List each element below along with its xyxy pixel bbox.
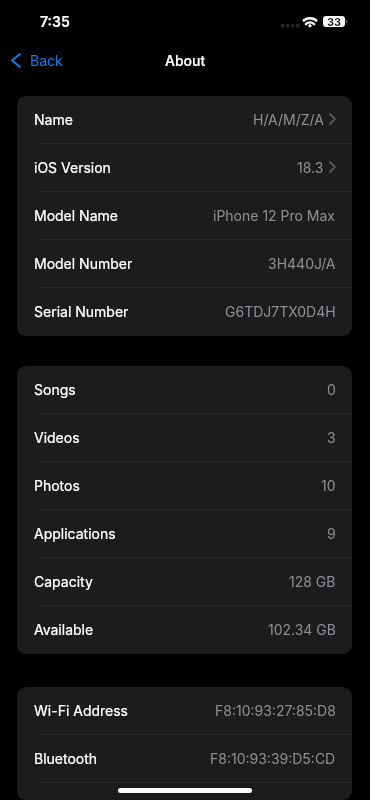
- button[interactable]: Name: [17, 96, 352, 144]
- staticText: Videos: [34, 429, 80, 446]
- button[interactable]: Available: [17, 606, 352, 654]
- staticText: Back: [30, 52, 63, 69]
- staticText: Model Name: [34, 207, 118, 224]
- staticText: Bluetooth: [34, 750, 98, 767]
- button[interactable]: Songs: [17, 366, 352, 414]
- staticText: F8:10:93:27:85:D8: [215, 702, 336, 719]
- staticText: Serial Number: [34, 303, 129, 320]
- button[interactable]: Back: [0, 47, 73, 74]
- staticText: Capacity: [34, 573, 93, 590]
- button[interactable]: Capacity: [17, 558, 352, 606]
- staticText: 3: [327, 429, 336, 446]
- button[interactable]: Wi-Fi Address: [17, 687, 352, 735]
- staticText: G6TDJ7TX0D4H: [225, 303, 336, 320]
- staticText: 9: [327, 525, 336, 542]
- staticText: 18.3: [297, 159, 324, 176]
- staticText: 102.34 GB: [268, 621, 336, 638]
- staticText: Name: [34, 111, 73, 128]
- staticText: 10: [321, 477, 336, 494]
- staticText: iPhone 12 Pro Max: [213, 207, 336, 224]
- button[interactable]: Photos: [17, 462, 352, 510]
- staticText: Photos: [34, 477, 80, 494]
- staticText: H/A/M/Z/A: [253, 111, 324, 128]
- staticText: Model Number: [34, 255, 133, 272]
- staticText: About: [165, 52, 206, 69]
- staticText: 0: [327, 381, 336, 398]
- staticText: 3H440J/A: [268, 255, 336, 272]
- button[interactable]: iOS Version: [17, 144, 352, 192]
- staticText: 7:35: [40, 13, 70, 30]
- button[interactable]: Applications: [17, 510, 352, 558]
- button[interactable]: [17, 783, 352, 800]
- button[interactable]: Model Name: [17, 192, 352, 240]
- staticText: Applications: [34, 525, 116, 542]
- staticText: Wi-Fi Address: [34, 702, 129, 719]
- staticText: 33: [327, 15, 342, 28]
- staticText: iOS Version: [34, 159, 111, 176]
- button[interactable]: Model Number: [17, 240, 352, 288]
- staticText: F8:10:93:39:D5:CD: [210, 750, 336, 767]
- staticText: 128 GB: [289, 573, 336, 590]
- button[interactable]: Serial Number: [17, 288, 352, 336]
- button[interactable]: Bluetooth: [17, 735, 352, 783]
- staticText: Available: [34, 621, 94, 638]
- button[interactable]: Videos: [17, 414, 352, 462]
- staticText: Songs: [34, 381, 76, 398]
